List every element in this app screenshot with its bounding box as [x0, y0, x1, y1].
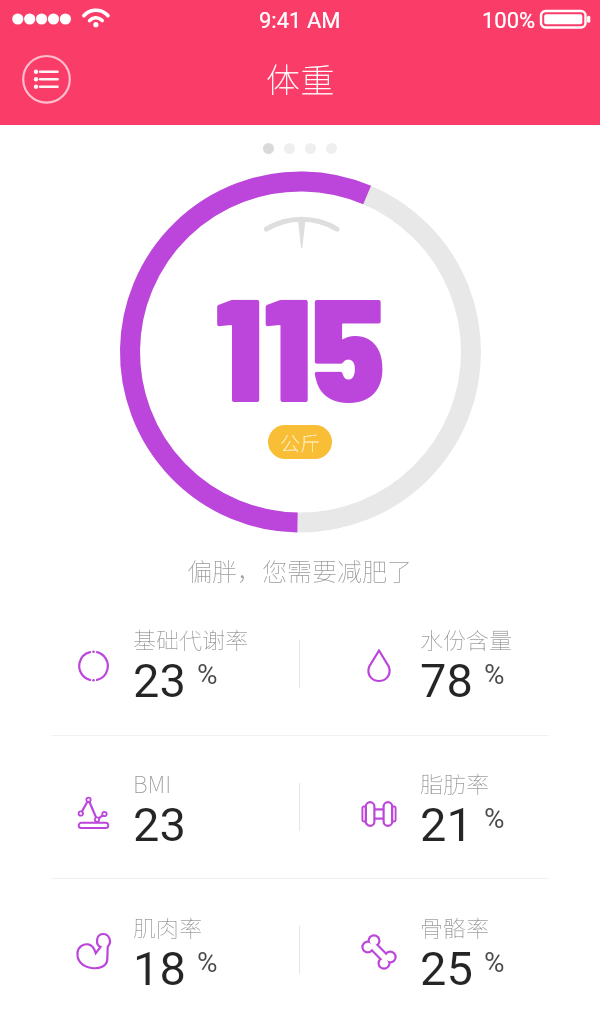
button[interactable]: BMI	[0, 751, 300, 895]
staticText: %	[484, 946, 505, 979]
staticText: 115	[215, 257, 385, 431]
button[interactable]: Page 3	[305, 143, 316, 154]
staticText: 23	[133, 653, 186, 708]
button[interactable]: 脂肪率	[300, 751, 600, 895]
staticText: 体重	[266, 54, 334, 103]
staticText: 18	[133, 941, 186, 996]
button[interactable]: 骨骼率	[300, 895, 600, 1020]
staticText: 肌肉率	[133, 910, 202, 943]
staticText: 基础代谢率	[133, 622, 248, 655]
button[interactable]: 肌肉率	[0, 895, 300, 1020]
button[interactable]: 公斤	[268, 425, 332, 459]
staticText: 偏胖，您需要减肥了	[187, 552, 413, 588]
staticText: 9:41 AM	[259, 8, 341, 34]
button[interactable]: Menu	[20, 53, 73, 106]
button[interactable]: 水份含量	[300, 607, 600, 751]
staticText: BMI	[133, 766, 172, 799]
staticText: 100%	[482, 8, 536, 34]
button[interactable]: 基础代谢率	[0, 607, 300, 751]
staticText: 水份含量	[420, 622, 512, 655]
staticText: 21	[420, 797, 473, 852]
staticText: 骨骼率	[420, 910, 489, 943]
staticText: 公斤	[280, 428, 320, 457]
staticText: %	[484, 658, 505, 691]
staticText: %	[197, 946, 218, 979]
staticText: %	[197, 658, 218, 691]
button[interactable]: Page 1	[263, 143, 274, 154]
button[interactable]: Page 4	[326, 143, 337, 154]
staticText: 脂肪率	[420, 766, 489, 799]
staticText: %	[484, 802, 505, 835]
button[interactable]: Page 2	[284, 143, 295, 154]
staticText: 25	[420, 941, 473, 996]
staticText: 78	[420, 653, 473, 708]
staticText: 23	[133, 797, 186, 852]
